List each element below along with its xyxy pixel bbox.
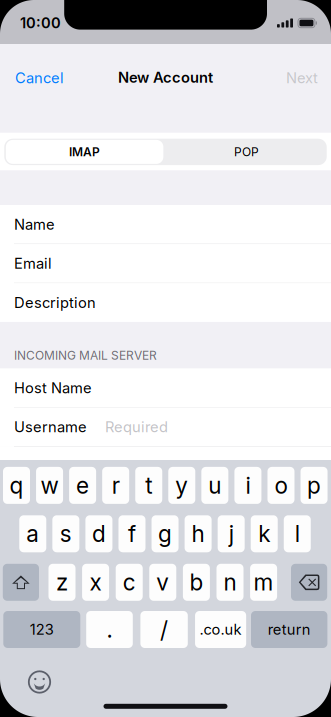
button[interactable]: POP xyxy=(166,139,327,165)
staticText: d xyxy=(92,520,106,547)
button[interactable]: .co.uk xyxy=(195,611,246,648)
staticText: IMAP xyxy=(69,145,100,159)
button[interactable]: t xyxy=(135,467,162,504)
button[interactable]: Username xyxy=(0,408,331,446)
staticText: o xyxy=(274,472,287,499)
button[interactable]: x xyxy=(82,564,109,601)
button[interactable]: 123 xyxy=(3,611,80,648)
button[interactable]: Cancel xyxy=(0,56,76,100)
staticText: h xyxy=(192,520,205,547)
button[interactable]: s xyxy=(52,515,79,552)
staticText: New Account xyxy=(118,69,213,86)
button[interactable]: z xyxy=(48,564,75,601)
button[interactable]: return xyxy=(251,611,327,648)
button[interactable]: m xyxy=(250,564,277,601)
staticText: 10:00 xyxy=(20,14,61,32)
staticText: u xyxy=(208,472,221,499)
button[interactable]: Host Name xyxy=(0,369,331,407)
button[interactable]: Description xyxy=(0,283,331,322)
button[interactable]: v xyxy=(149,564,176,601)
staticText: q xyxy=(9,472,23,499)
staticText: f xyxy=(128,520,136,547)
staticText: l xyxy=(295,520,300,547)
button[interactable]: l xyxy=(284,515,311,552)
staticText: k xyxy=(258,520,270,547)
staticText: Next xyxy=(286,69,318,87)
staticText: g xyxy=(158,520,172,547)
staticText: w xyxy=(41,472,59,499)
staticText: v xyxy=(156,569,169,596)
staticText: Name xyxy=(14,216,55,233)
staticText: 123 xyxy=(30,621,54,638)
button[interactable]: y xyxy=(168,467,195,504)
button[interactable]: q xyxy=(3,467,30,504)
button[interactable]: Name xyxy=(0,205,331,244)
button[interactable]: d xyxy=(85,515,112,552)
staticText: Required xyxy=(105,418,168,436)
staticText: i xyxy=(245,472,250,499)
button[interactable]: . xyxy=(86,611,133,648)
staticText: j xyxy=(229,520,234,547)
staticText: n xyxy=(223,569,236,596)
button[interactable]: n xyxy=(216,564,243,601)
staticText: Cancel xyxy=(15,69,64,87)
button[interactable]: u xyxy=(201,467,228,504)
button[interactable]: b xyxy=(183,564,210,601)
staticText: t xyxy=(145,472,152,499)
staticText: Description xyxy=(14,294,96,311)
staticText: p xyxy=(307,472,321,499)
staticText: INCOMING MAIL SERVER xyxy=(14,348,157,362)
button[interactable]: g xyxy=(151,515,178,552)
button[interactable]: f xyxy=(118,515,145,552)
button[interactable]: w xyxy=(36,467,63,504)
staticText: Username xyxy=(14,418,87,436)
button[interactable]: e xyxy=(69,467,96,504)
staticText: / xyxy=(160,616,168,643)
staticText: s xyxy=(60,520,72,547)
button[interactable]: Email xyxy=(0,244,331,283)
staticText: e xyxy=(76,472,89,499)
button[interactable]: Next xyxy=(274,56,331,100)
staticText: b xyxy=(189,569,203,596)
button[interactable]: j xyxy=(218,515,245,552)
staticText: Host Name xyxy=(14,379,92,396)
staticText: .co.uk xyxy=(200,621,242,638)
button[interactable]: IMAP xyxy=(4,139,165,165)
staticText: c xyxy=(123,569,136,596)
button[interactable]: Delete xyxy=(291,564,327,601)
staticText: z xyxy=(56,569,68,596)
button[interactable]: i xyxy=(234,467,261,504)
staticText: r xyxy=(112,472,120,499)
button[interactable]: p xyxy=(300,467,327,504)
staticText: m xyxy=(254,569,274,596)
staticText: . xyxy=(106,616,112,643)
button[interactable]: r xyxy=(102,467,129,504)
staticText: y xyxy=(175,472,188,499)
button[interactable]: k xyxy=(251,515,278,552)
staticText: return xyxy=(268,621,311,638)
button[interactable]: Shift xyxy=(3,564,39,601)
button[interactable]: Emoji keyboard xyxy=(28,671,51,693)
staticText: POP xyxy=(234,145,259,159)
staticText: a xyxy=(26,520,39,547)
button[interactable]: o xyxy=(267,467,294,504)
button[interactable]: c xyxy=(116,564,143,601)
staticText: Email xyxy=(14,255,52,272)
button[interactable]: h xyxy=(185,515,212,552)
button[interactable]: / xyxy=(140,611,188,648)
staticText: x xyxy=(90,569,102,596)
button[interactable]: a xyxy=(19,515,46,552)
